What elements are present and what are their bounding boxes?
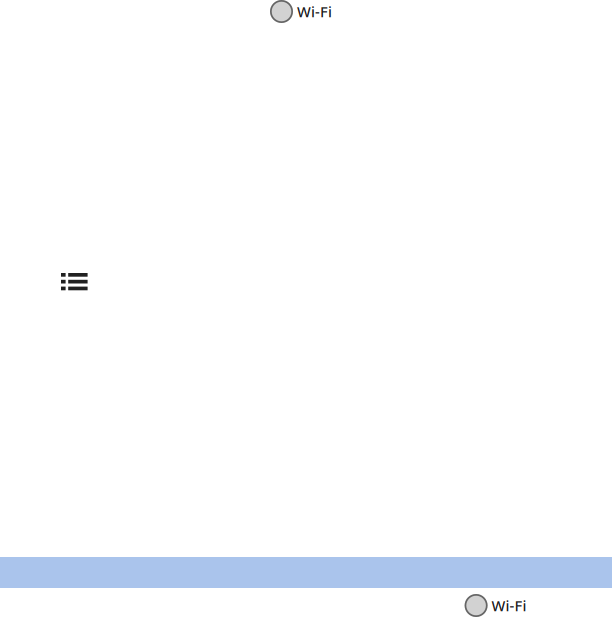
button[interactable]: List — [61, 273, 88, 290]
button[interactable]: Wi-Fi — [270, 0, 332, 23]
button[interactable]: Wi-Fi — [465, 594, 527, 617]
staticText: Wi-Fi — [297, 2, 332, 21]
staticText: Wi-Fi — [492, 596, 527, 615]
